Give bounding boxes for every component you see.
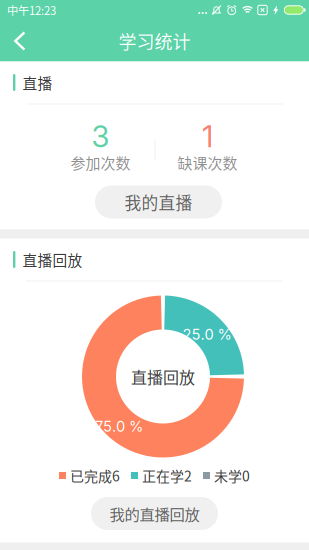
staticText: 我的直播回放 <box>109 502 199 525</box>
staticText: 参加次数 <box>70 152 130 173</box>
staticText: 直播 <box>22 72 52 93</box>
staticText: 缺课次数 <box>177 152 237 173</box>
staticText: 3 <box>91 119 109 154</box>
staticText: 未学0 <box>214 465 250 486</box>
staticText: 75.0 % <box>95 418 143 435</box>
staticText: 中午12:23 <box>7 2 56 18</box>
button[interactable]: 我的直播 <box>95 185 222 218</box>
staticText: 我的直播 <box>124 190 192 214</box>
button[interactable]: Back <box>0 21 39 60</box>
staticText: 正在学2 <box>142 465 192 486</box>
button[interactable]: 我的直播回放 <box>91 497 218 530</box>
staticText: 学习统计 <box>118 28 190 54</box>
staticText: 1 <box>202 119 213 154</box>
staticText: 已完成6 <box>70 465 120 486</box>
staticText: 直播回放 <box>22 249 82 270</box>
staticText: 25.0 % <box>182 326 231 343</box>
staticText: 直播回放 <box>131 365 195 388</box>
